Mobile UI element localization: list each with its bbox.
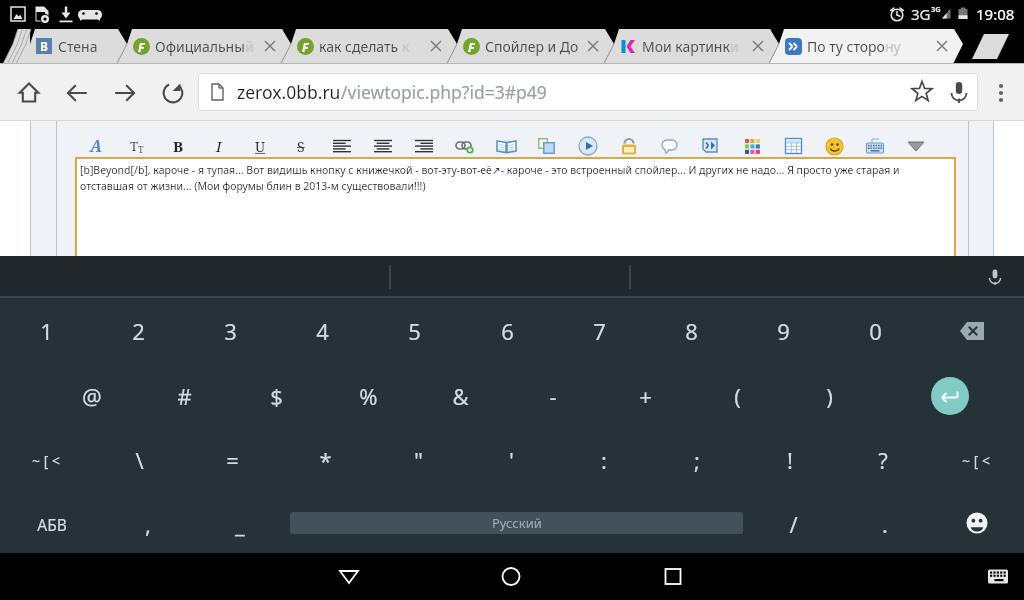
button[interactable]: - bbox=[507, 364, 599, 428]
button[interactable]: \ bbox=[93, 428, 185, 492]
button[interactable]: 3 bbox=[184, 299, 276, 363]
button[interactable]: 6 bbox=[461, 299, 553, 363]
staticText: A bbox=[90, 135, 103, 157]
button[interactable]: Editor tool 19 bbox=[859, 132, 891, 160]
button[interactable]: ; bbox=[651, 428, 743, 492]
staticText: 0 bbox=[869, 316, 882, 346]
button[interactable]: 2 bbox=[92, 299, 184, 363]
button[interactable]: 0 bbox=[829, 299, 921, 363]
button[interactable]: Close tab bbox=[423, 33, 449, 59]
button[interactable]: " bbox=[372, 428, 464, 492]
staticText: й bbox=[245, 37, 254, 56]
button[interactable]: Close tab bbox=[745, 33, 771, 59]
button[interactable]: F bbox=[447, 28, 604, 64]
button[interactable]: Backspace bbox=[950, 309, 994, 353]
button[interactable]: Editor tool 1 bbox=[121, 132, 153, 160]
button[interactable]: Editor tool 0 bbox=[80, 132, 112, 160]
button[interactable]: @ bbox=[46, 364, 138, 428]
button[interactable]: Close tab bbox=[929, 33, 955, 59]
button[interactable]: = bbox=[186, 428, 278, 492]
button[interactable]: Home bbox=[487, 553, 535, 600]
staticText: отставшая от жизни... (Мои форумы блин в… bbox=[80, 179, 426, 193]
button[interactable]: Bookmark bbox=[905, 75, 939, 109]
staticText: 3 bbox=[224, 316, 237, 346]
button[interactable]: Editor tool 3 bbox=[203, 132, 235, 160]
button[interactable]: ~ [ < bbox=[0, 428, 92, 492]
button[interactable]: ! bbox=[744, 428, 836, 492]
button[interactable]: Hide keyboard bbox=[978, 553, 1018, 600]
staticText: [b]Beyond[/b], кароче - я тупая... Вот в… bbox=[80, 163, 900, 177]
button[interactable]: 4 bbox=[276, 299, 368, 363]
button[interactable]: Editor tool 18 bbox=[818, 132, 850, 160]
button[interactable]: Editor tool 15 bbox=[695, 132, 727, 160]
button[interactable]: По ту сторо bbox=[769, 28, 953, 64]
button[interactable]: Editor tool 7 bbox=[367, 132, 399, 160]
button[interactable]: Close tab bbox=[257, 33, 283, 59]
button[interactable]: 8 bbox=[645, 299, 737, 363]
button[interactable]: zerox.0bb.ru bbox=[198, 73, 978, 111]
button[interactable]: Emoji bbox=[957, 503, 997, 543]
button[interactable]: : bbox=[558, 428, 650, 492]
staticText: U bbox=[255, 137, 266, 156]
staticText: . bbox=[882, 509, 888, 539]
staticText: F bbox=[302, 39, 309, 55]
button[interactable]: . bbox=[839, 492, 931, 556]
button[interactable]: + bbox=[599, 364, 691, 428]
button[interactable]: ? bbox=[837, 428, 929, 492]
staticText: " bbox=[414, 445, 423, 475]
staticText: 3G bbox=[931, 4, 941, 14]
button[interactable]: Voice search bbox=[942, 75, 976, 109]
button[interactable]: _ bbox=[194, 492, 286, 556]
button[interactable]: B bbox=[20, 28, 117, 64]
button[interactable]: Forward bbox=[106, 74, 144, 112]
button[interactable]: Editor tool 10 bbox=[490, 132, 522, 160]
staticText: ? bbox=[878, 445, 888, 475]
button[interactable]: Back bbox=[58, 74, 96, 112]
button[interactable]: Editor tool 9 bbox=[449, 132, 481, 160]
button[interactable]: % bbox=[322, 364, 414, 428]
button[interactable]: , bbox=[102, 492, 194, 556]
button[interactable]: Editor tool 5 bbox=[285, 132, 317, 160]
button[interactable]: Editor tool 14 bbox=[654, 132, 686, 160]
button[interactable]: ~ [ < bbox=[930, 428, 1022, 492]
button[interactable]: Home bbox=[10, 74, 48, 112]
staticText: Русский bbox=[492, 514, 542, 532]
button[interactable]: Editor tool 8 bbox=[408, 132, 440, 160]
button[interactable]: Editor tool 13 bbox=[613, 132, 645, 160]
button[interactable]: F bbox=[117, 28, 281, 64]
button[interactable]: & bbox=[414, 364, 506, 428]
staticText: F bbox=[468, 39, 475, 55]
button[interactable]: 9 bbox=[737, 299, 829, 363]
button[interactable]: Back bbox=[325, 553, 373, 600]
button[interactable]: Editor tool 12 bbox=[572, 132, 604, 160]
button[interactable]: More options bbox=[985, 64, 1024, 121]
button[interactable]: АБВ bbox=[6, 492, 98, 556]
button[interactable]: 1 bbox=[0, 299, 92, 363]
button[interactable]: Editor tool 6 bbox=[326, 132, 358, 160]
button[interactable]: ' bbox=[465, 428, 557, 492]
button[interactable]: Editor tool 4 bbox=[244, 132, 276, 160]
button[interactable]: / bbox=[747, 492, 839, 556]
button[interactable]: * bbox=[279, 428, 371, 492]
button[interactable]: Reload bbox=[154, 74, 192, 112]
button[interactable]: Close tab bbox=[580, 33, 606, 59]
button[interactable]: $ bbox=[230, 364, 322, 428]
button[interactable]: Editor tool 17 bbox=[777, 132, 809, 160]
staticText: к bbox=[402, 37, 410, 56]
button[interactable]: Editor tool 2 bbox=[162, 132, 194, 160]
button[interactable]: # bbox=[138, 364, 230, 428]
button[interactable]: ) bbox=[783, 364, 875, 428]
button[interactable]: Voice input bbox=[980, 262, 1010, 292]
button[interactable]: F bbox=[281, 28, 447, 64]
button[interactable]: 7 bbox=[553, 299, 645, 363]
staticText: B bbox=[40, 38, 48, 54]
button[interactable]: Русский bbox=[290, 512, 743, 534]
button[interactable]: Editor tool 16 bbox=[736, 132, 768, 160]
button[interactable]: Editor tool 20 bbox=[900, 132, 932, 160]
button[interactable]: Enter bbox=[931, 377, 969, 415]
button[interactable]: 5 bbox=[368, 299, 460, 363]
button[interactable]: Recent apps bbox=[649, 553, 697, 600]
button[interactable]: Editor tool 11 bbox=[531, 132, 563, 160]
button[interactable]: Мои картинк bbox=[604, 28, 769, 64]
button[interactable]: ( bbox=[691, 364, 783, 428]
